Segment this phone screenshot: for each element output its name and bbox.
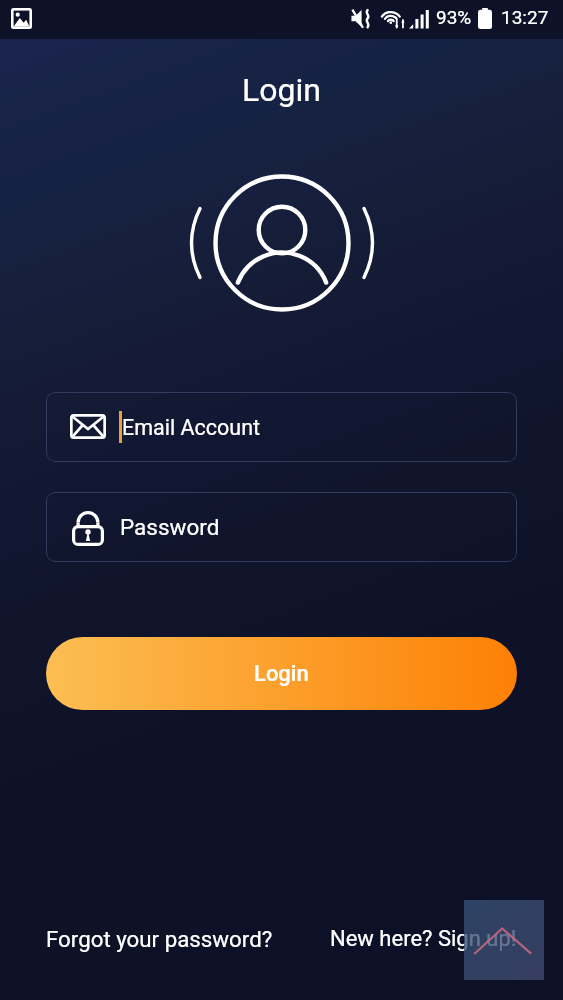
staticText: 13:27: [501, 6, 549, 28]
staticText: Password: [120, 514, 220, 540]
staticText: Login: [0, 71, 563, 109]
staticText: New here? Sign up!: [330, 926, 517, 952]
button[interactable]: New here? Sign up!: [330, 926, 517, 952]
button[interactable]: Screenshot: [11, 8, 32, 29]
button[interactable]: Forgot your password?: [46, 926, 273, 952]
staticText: Login: [254, 661, 309, 687]
staticText: 93%: [436, 6, 472, 28]
button[interactable]: Login: [46, 637, 517, 710]
button[interactable]: Password: [46, 492, 517, 562]
staticText: Forgot your password?: [46, 926, 273, 952]
button[interactable]: Email Account: [46, 392, 517, 462]
staticText: Email Account: [122, 415, 261, 440]
